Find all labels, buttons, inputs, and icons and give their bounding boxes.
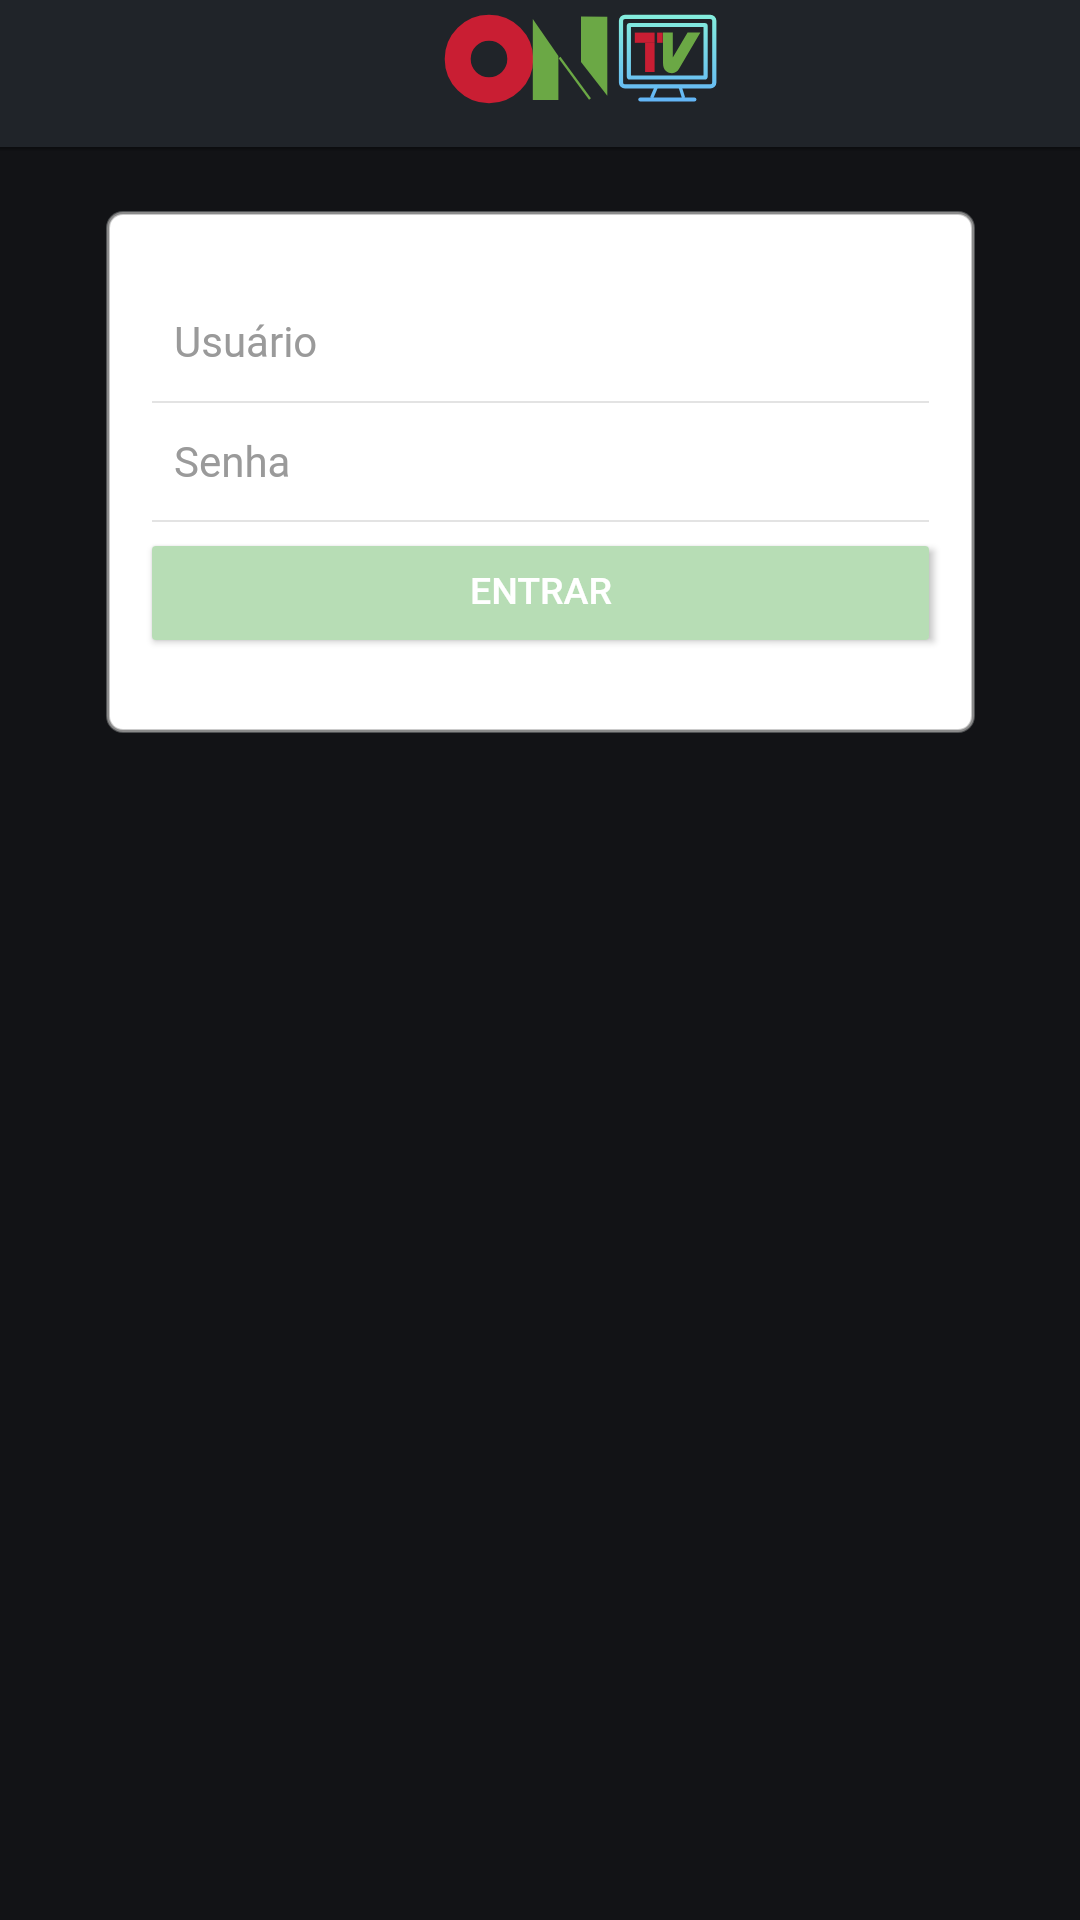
staticText: ENTRAR <box>470 569 612 613</box>
button[interactable]: ENTRAR <box>152 546 929 640</box>
staticText: Senha <box>174 438 291 487</box>
staticText: Usuário <box>174 318 318 367</box>
button[interactable]: Senha <box>152 427 929 522</box>
other: ON TV <box>0 0 1080 147</box>
button[interactable]: Usuário <box>152 307 929 402</box>
